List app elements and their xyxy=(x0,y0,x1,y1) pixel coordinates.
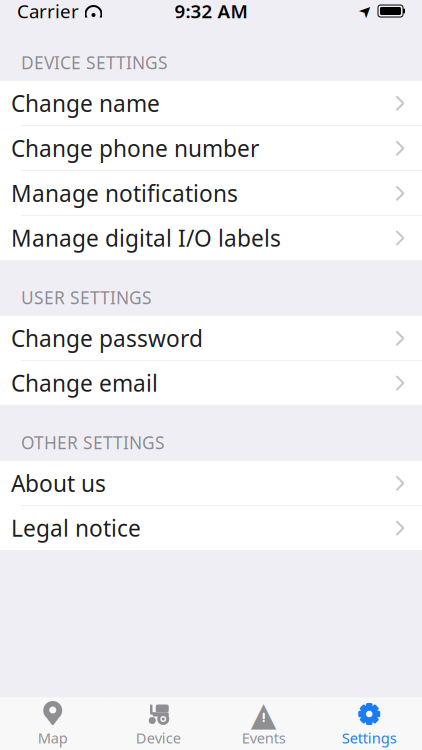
staticText: Carrier xyxy=(17,0,79,23)
button[interactable]: Change name xyxy=(0,81,422,126)
staticText: Change password xyxy=(11,323,203,353)
staticText: USER SETTINGS xyxy=(21,286,152,309)
staticText: Change phone number xyxy=(11,133,259,163)
button[interactable]: Manage notifications xyxy=(0,171,422,216)
button[interactable]: Change phone number xyxy=(0,126,422,171)
button[interactable]: Settings xyxy=(316,697,422,750)
staticText: ▲ xyxy=(251,695,277,733)
staticText: Legal notice xyxy=(11,513,141,543)
staticText: ➤ xyxy=(359,2,372,20)
staticText: Manage notifications xyxy=(11,178,238,208)
button[interactable]: ▲ xyxy=(211,697,316,750)
staticText: Map xyxy=(38,728,68,747)
staticText: Events xyxy=(242,728,286,747)
staticText: Device xyxy=(136,728,181,747)
staticText: Change email xyxy=(11,368,158,398)
staticText: About us xyxy=(11,468,106,498)
button[interactable]: Legal notice xyxy=(0,506,422,550)
button[interactable]: Device xyxy=(105,697,211,750)
button[interactable]: Manage digital I/O labels xyxy=(0,216,422,260)
staticText: 9:32 AM xyxy=(174,0,247,23)
staticText: DEVICE SETTINGS xyxy=(21,51,168,74)
staticText: OTHER SETTINGS xyxy=(21,431,165,454)
staticText: Settings xyxy=(342,728,397,747)
staticText: Manage digital I/O labels xyxy=(11,223,281,253)
button[interactable]: Change email xyxy=(0,361,422,405)
staticText: Change name xyxy=(11,88,160,118)
button[interactable]: Change password xyxy=(0,316,422,361)
button[interactable]: About us xyxy=(0,461,422,506)
button[interactable]: Map xyxy=(0,697,105,750)
